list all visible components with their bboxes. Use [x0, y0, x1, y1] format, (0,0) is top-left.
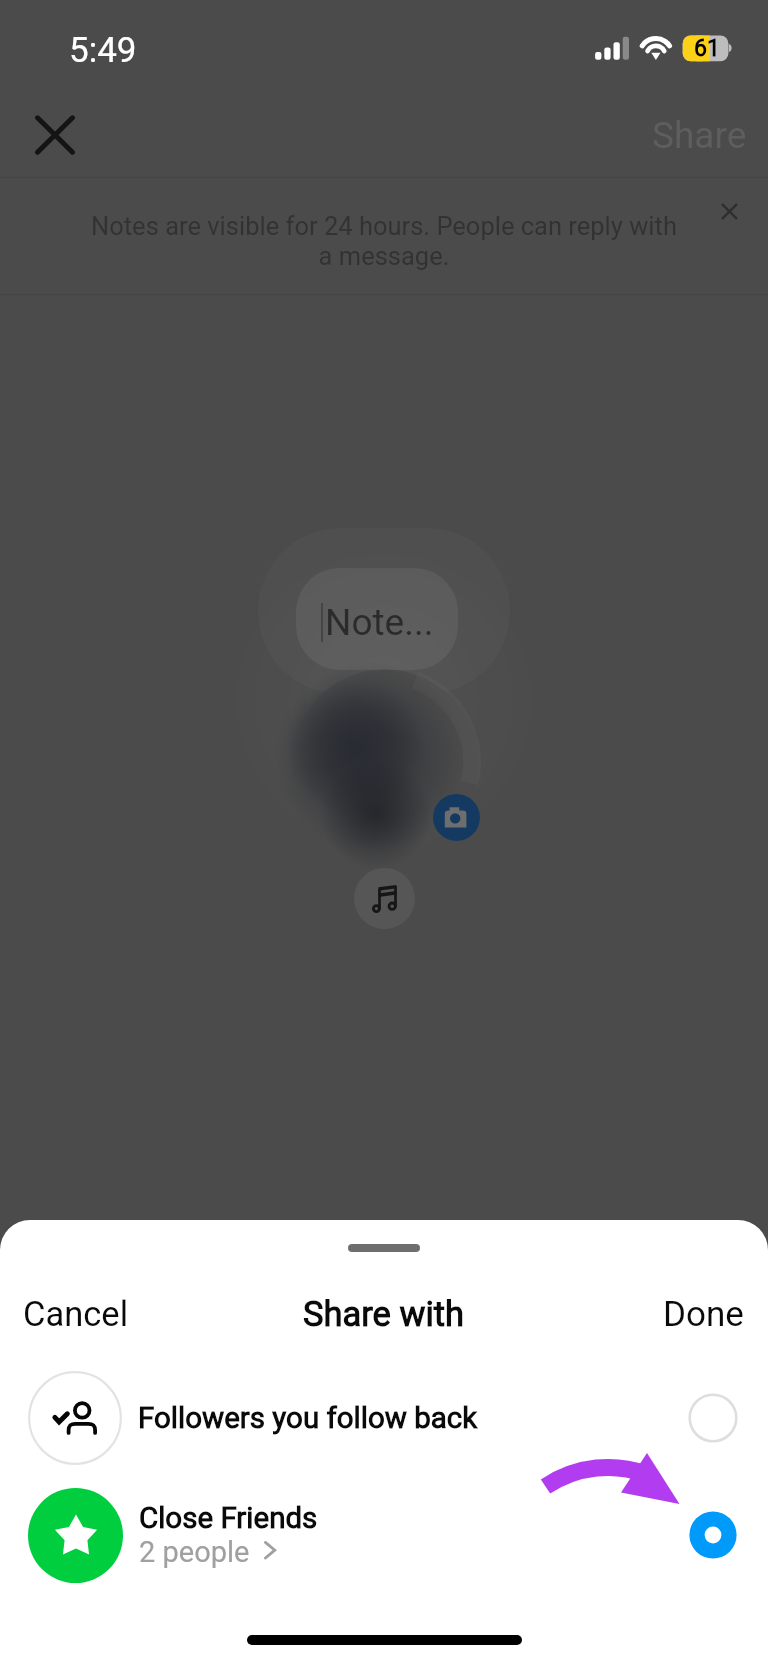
- button[interactable]: Add music: [354, 868, 415, 929]
- button[interactable]: Close: [15, 95, 95, 175]
- staticText: Cancel: [23, 1294, 129, 1334]
- staticText: Note...: [325, 601, 434, 644]
- staticText: Done: [663, 1294, 744, 1335]
- staticText: Share: [652, 114, 747, 157]
- button[interactable]: Followers you follow back: [0, 1360, 768, 1476]
- button[interactable]: Close Friends: [0, 1477, 768, 1593]
- button[interactable]: Dismiss: [703, 185, 755, 237]
- button[interactable]: Done: [644, 1284, 762, 1344]
- button[interactable]: Add photo: [433, 794, 480, 841]
- staticText: Share with: [303, 1294, 465, 1334]
- staticText: Notes are visible for 24 hours. People c…: [44, 211, 724, 271]
- button[interactable]: Select Followers you follow back: [683, 1388, 743, 1448]
- button[interactable]: Profile photo: [290, 668, 480, 858]
- button[interactable]: Cancel: [6, 1284, 146, 1344]
- button[interactable]: Share: [636, 100, 762, 170]
- button[interactable]: Close Friends selected: [683, 1505, 743, 1565]
- staticText: Followers you follow back: [138, 1401, 478, 1436]
- staticText: 2 people: [139, 1535, 250, 1569]
- button[interactable]: Note...: [296, 568, 458, 670]
- staticText: 61: [694, 35, 720, 61]
- staticText: 5:49: [69, 30, 137, 71]
- staticText: Close Friends: [139, 1501, 318, 1536]
